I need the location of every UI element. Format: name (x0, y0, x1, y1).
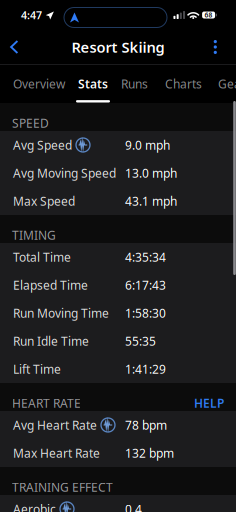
staticText: Stats (78, 76, 108, 92)
button[interactable]: Gear (210, 67, 236, 102)
staticText: Runs (121, 76, 148, 92)
staticText: 132 bpm (125, 445, 174, 461)
staticText: HEART RATE (12, 395, 81, 411)
staticText: Avg Speed (13, 137, 72, 153)
staticText: Total Time (13, 249, 71, 265)
staticText: Lift Time (13, 361, 61, 377)
staticText: Run Idle Time (13, 333, 89, 349)
button[interactable]: HELP (194, 395, 224, 411)
staticText: Aerobic (13, 501, 56, 512)
staticText: Avg Moving Speed (13, 165, 116, 181)
staticText: 4:35:34 (125, 249, 166, 265)
staticText: Overview (13, 76, 65, 92)
staticText: 78 bpm (125, 417, 167, 433)
button[interactable]: Charts (153, 67, 213, 102)
staticText: 13.0 mph (125, 165, 177, 181)
staticText: Gear (218, 76, 236, 92)
button[interactable]: Stats (73, 67, 113, 102)
staticText: 1:41:29 (125, 361, 166, 377)
staticText: 43.1 mph (125, 193, 177, 209)
button[interactable]: Overview (7, 67, 71, 102)
staticText: 68 (205, 11, 213, 19)
staticText: Run Moving Time (13, 305, 109, 321)
staticText: 9.0 mph (125, 137, 170, 153)
staticText: HELP (194, 395, 224, 411)
staticText: Max Speed (13, 193, 75, 209)
staticText: 0.4 (125, 501, 142, 512)
staticText: Resort Skiing (71, 37, 164, 57)
staticText: Avg Heart Rate (13, 417, 97, 433)
staticText: 6:17:43 (125, 277, 166, 293)
staticText: TRAINING EFFECT (12, 479, 113, 495)
staticText: SPEED (12, 115, 49, 131)
staticText: Max Heart Rate (13, 445, 100, 461)
staticText: 55:35 (125, 333, 156, 349)
button[interactable]: Back (0, 31, 24, 63)
button[interactable]: Runs (113, 67, 155, 102)
staticText: 4:47 (21, 8, 42, 22)
button[interactable]: More options (204, 31, 236, 63)
staticText: Elapsed Time (13, 277, 88, 293)
staticText: TIMING (12, 227, 56, 243)
staticText: Charts (165, 76, 202, 92)
staticText: 1:58:30 (125, 305, 166, 321)
